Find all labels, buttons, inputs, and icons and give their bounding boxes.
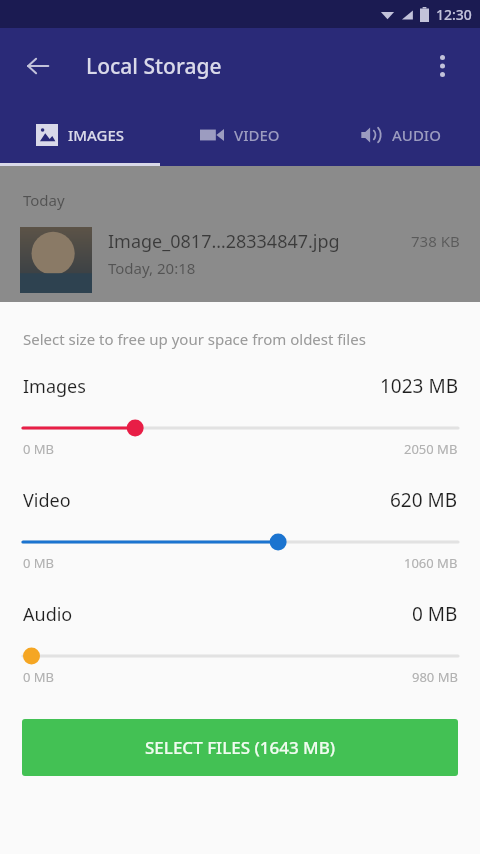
button[interactable]: Back — [14, 42, 62, 90]
staticText: 980 MB — [412, 668, 458, 686]
staticText: 0 MB — [23, 440, 55, 458]
staticText: 620 MB — [390, 487, 458, 513]
button[interactable]: More options — [418, 42, 466, 90]
staticText: 2050 MB — [404, 440, 458, 458]
staticText: Video — [23, 488, 71, 513]
staticText: Today, 20:18 — [108, 258, 196, 278]
staticText: 0 MB — [23, 554, 55, 572]
staticText: Audio — [23, 602, 73, 627]
staticText: Select size to free up your space from o… — [23, 329, 366, 349]
button[interactable]: VIDEO — [160, 104, 320, 166]
button[interactable]: AUDIO — [320, 104, 480, 166]
button[interactable]: Audio — [0, 601, 480, 686]
button[interactable]: Video — [0, 487, 480, 572]
staticText: IMAGES — [68, 125, 125, 145]
staticText: 1023 MB — [380, 373, 458, 399]
staticText: Local Storage — [86, 52, 222, 81]
staticText: 1060 MB — [404, 554, 458, 572]
staticText: 12:30 — [436, 5, 472, 24]
staticText: 0 MB — [23, 668, 55, 686]
staticText: AUDIO — [392, 125, 441, 145]
button[interactable]: IMAGES — [0, 104, 160, 166]
staticText: Images — [23, 374, 86, 399]
staticText: SELECT FILES (1643 MB) — [145, 736, 336, 759]
staticText: VIDEO — [234, 125, 280, 145]
staticText: Image_0817…28334847.jpg — [108, 229, 340, 254]
staticText: 0 MB — [412, 601, 458, 627]
staticText: 738 KB — [411, 231, 460, 251]
button[interactable]: SELECT FILES (1643 MB) — [22, 719, 458, 776]
button[interactable]: Images — [0, 373, 480, 458]
staticText: Today — [23, 190, 65, 210]
